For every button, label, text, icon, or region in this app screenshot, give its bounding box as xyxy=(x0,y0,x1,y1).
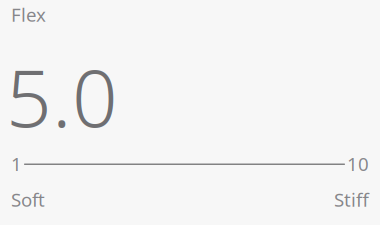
staticText: Soft xyxy=(11,187,45,212)
staticText: Flex xyxy=(11,2,46,27)
button[interactable]: 1 xyxy=(11,151,369,225)
staticText: 5.0 xyxy=(6,43,118,149)
staticText: Stiff xyxy=(334,187,369,212)
staticText: 10 xyxy=(347,151,369,176)
staticText: 1 xyxy=(11,151,22,176)
